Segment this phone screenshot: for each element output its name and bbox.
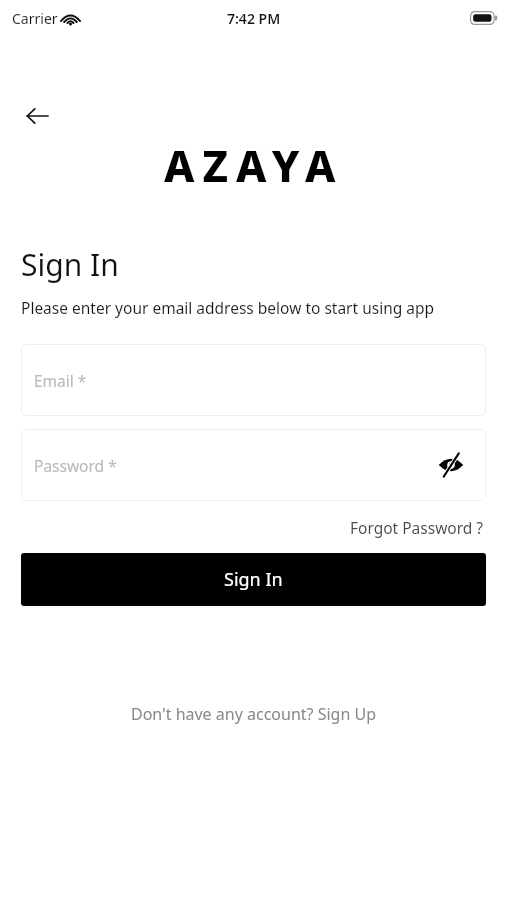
button[interactable]: Sign In	[21, 553, 486, 606]
staticText: Please enter your email address below to…	[21, 297, 435, 318]
staticText: Email *	[34, 370, 87, 391]
staticText: Password *	[34, 455, 117, 476]
button[interactable]: Forgot Password ?	[348, 514, 486, 541]
staticText: Carrier	[12, 9, 58, 28]
button[interactable]: Show password	[434, 448, 468, 482]
staticText: AZAYA	[164, 136, 344, 195]
staticText: Forgot Password ?	[350, 517, 484, 538]
staticText: Sign In	[21, 244, 119, 285]
button[interactable]: Back	[19, 98, 55, 134]
button[interactable]: Email *	[21, 344, 486, 416]
button[interactable]: Password *	[21, 429, 486, 501]
staticText: Don't have any account? Sign Up	[131, 703, 376, 725]
staticText: 7:42 PM	[227, 9, 281, 28]
button[interactable]: Don't have any account? Sign Up	[125, 699, 382, 729]
staticText: Sign In	[224, 567, 283, 592]
